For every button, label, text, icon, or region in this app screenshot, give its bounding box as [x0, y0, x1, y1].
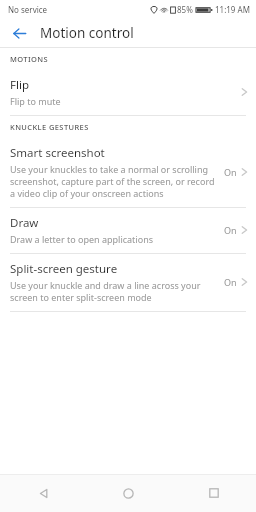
staticText: Flip	[10, 77, 29, 93]
staticText: 85%	[177, 4, 193, 15]
staticText: KNUCKLE GESTURES	[10, 122, 89, 132]
staticText: MOTIONS	[10, 54, 49, 64]
staticText: On	[224, 166, 237, 178]
staticText: Use your knuckle and draw a line across …	[10, 279, 201, 291]
button[interactable]: Smart screenshot	[0, 138, 256, 207]
button[interactable]: Recent apps	[171, 474, 256, 512]
button[interactable]: Draw	[0, 208, 256, 253]
staticText: On	[224, 276, 237, 288]
staticText: On	[224, 224, 237, 236]
button[interactable]: Back	[0, 474, 86, 512]
staticText: screen to enter split-screen mode	[10, 291, 152, 303]
staticText: 11:19 AM	[215, 4, 250, 15]
staticText: Flip to mute	[10, 95, 61, 107]
button[interactable]: Flip	[0, 70, 256, 115]
staticText: Motion control	[40, 24, 134, 42]
staticText: a video clip of your onscreen actions	[10, 187, 164, 199]
button[interactable]: Home	[86, 474, 171, 512]
staticText: Split-screen gesture	[10, 261, 118, 277]
button[interactable]: Split-screen gesture	[0, 254, 256, 311]
staticText: Draw a letter to open applications	[10, 233, 154, 245]
staticText: Use your knuckles to take a normal or sc…	[10, 163, 209, 175]
staticText: screenshot, capture part of the screen, …	[10, 175, 215, 187]
staticText: Smart screenshot	[10, 145, 105, 161]
button[interactable]: Back	[6, 20, 32, 46]
staticText: No service	[8, 4, 48, 15]
staticText: Draw	[10, 215, 39, 231]
